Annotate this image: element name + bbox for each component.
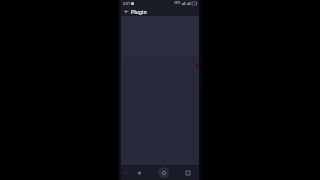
button[interactable]: Recent apps — [183, 168, 192, 177]
button[interactable]: Hide keyboard — [124, 171, 127, 174]
button[interactable]: Back — [134, 168, 143, 177]
staticText: Plugin — [131, 8, 147, 15]
button[interactable]: Back — [122, 7, 130, 15]
button[interactable]: Home — [158, 167, 169, 178]
staticText: 2:51 — [123, 1, 130, 6]
staticText: 38% — [174, 1, 181, 5]
